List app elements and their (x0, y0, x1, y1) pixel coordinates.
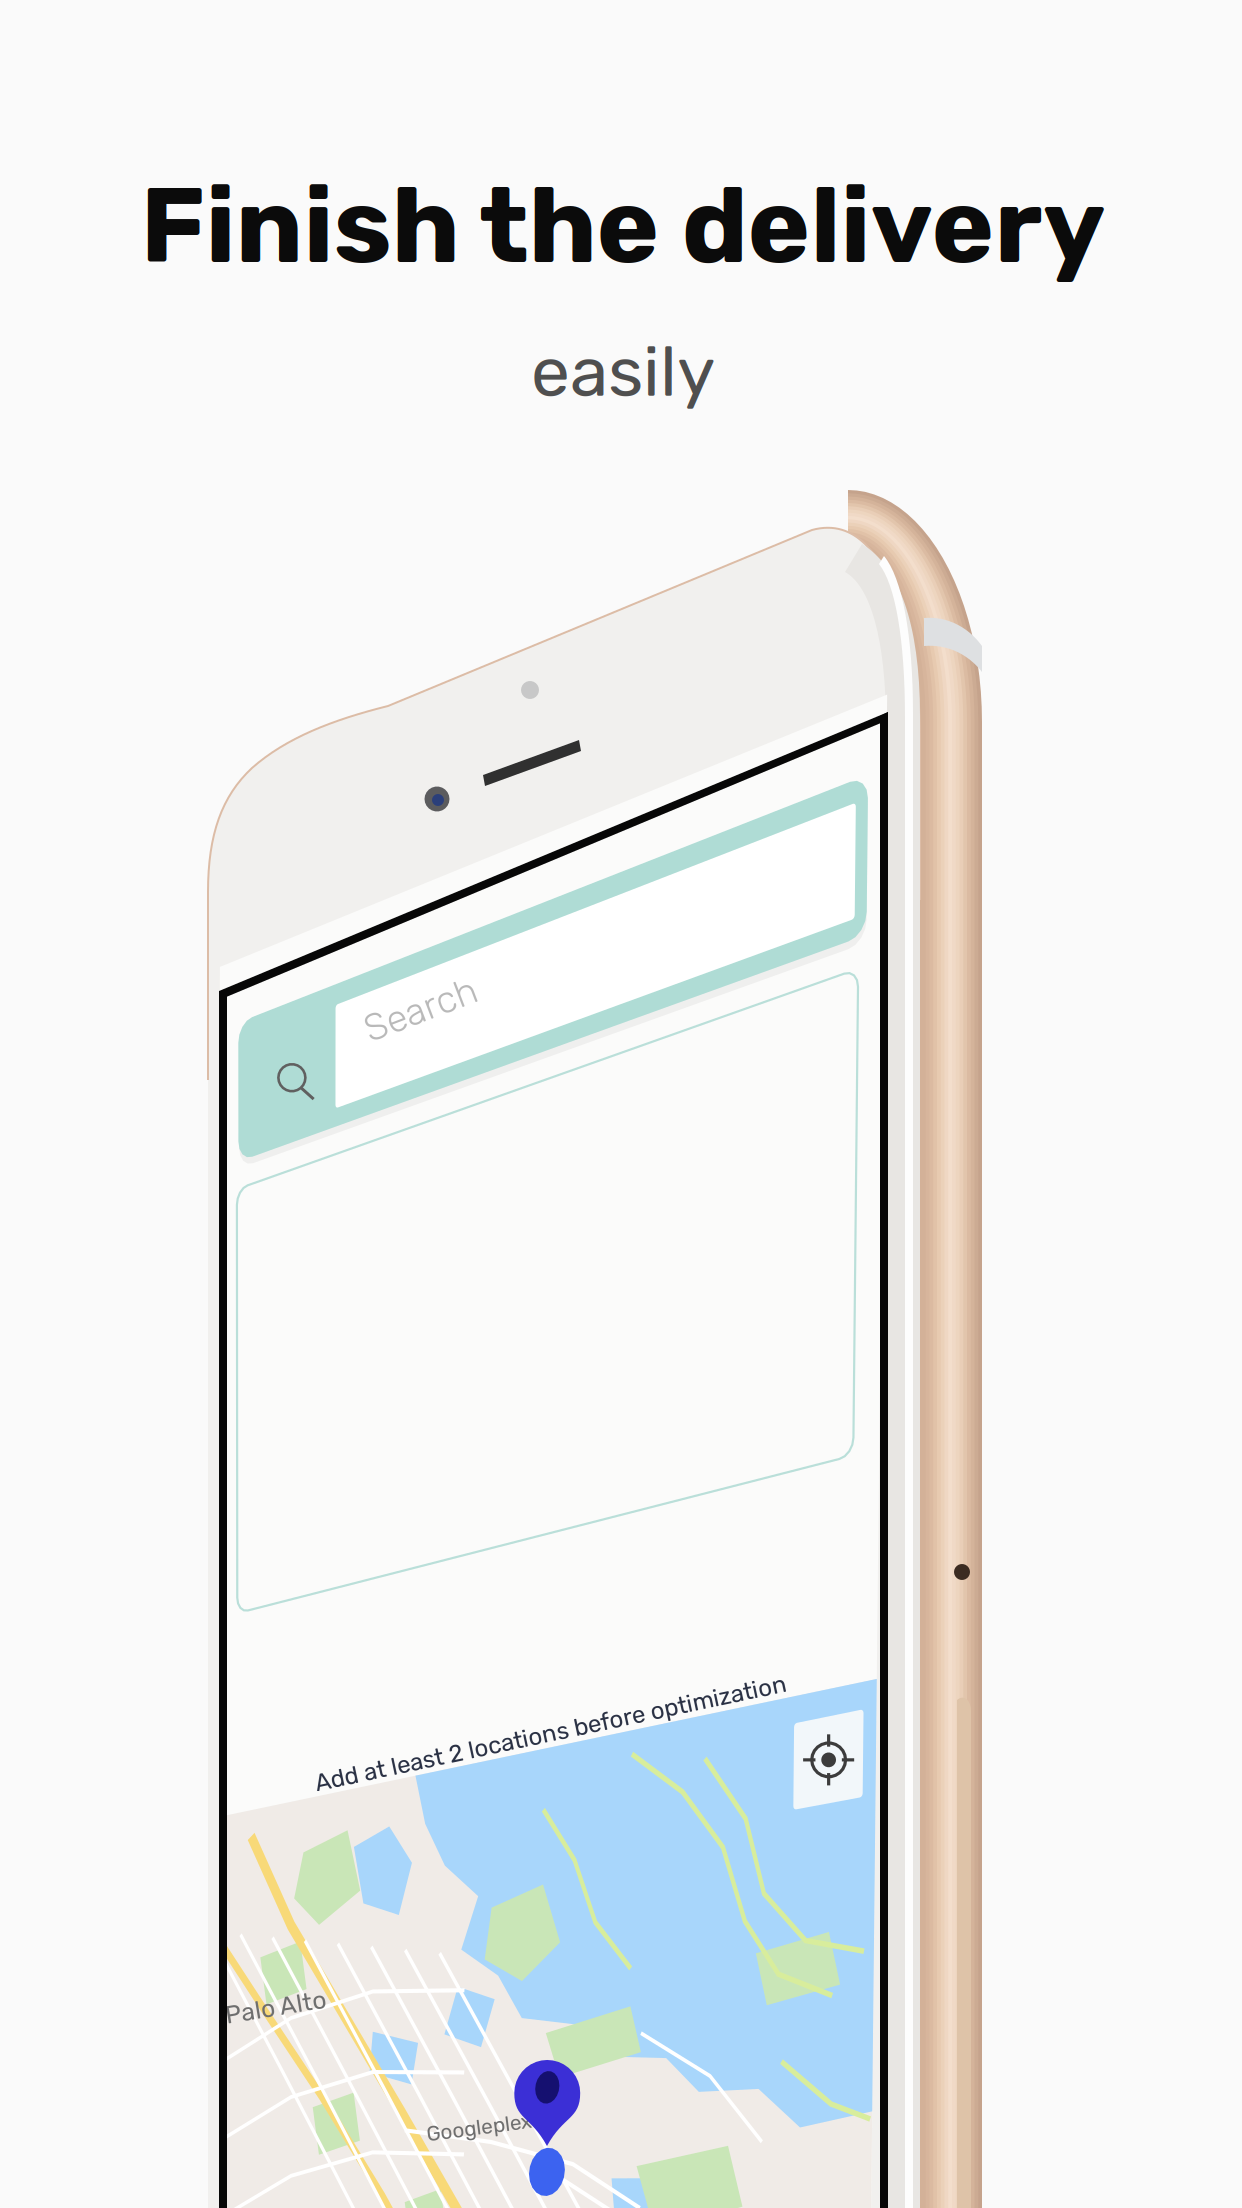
staticText: easily (531, 331, 715, 413)
staticText: Palo Alto (225, 1993, 327, 2022)
staticText: Add at least 2 locations before optimiza… (310, 1719, 792, 1747)
staticText: Search (361, 987, 479, 1031)
staticText: Finish the delivery (140, 164, 1105, 288)
staticText: Googleplex (426, 2115, 532, 2140)
